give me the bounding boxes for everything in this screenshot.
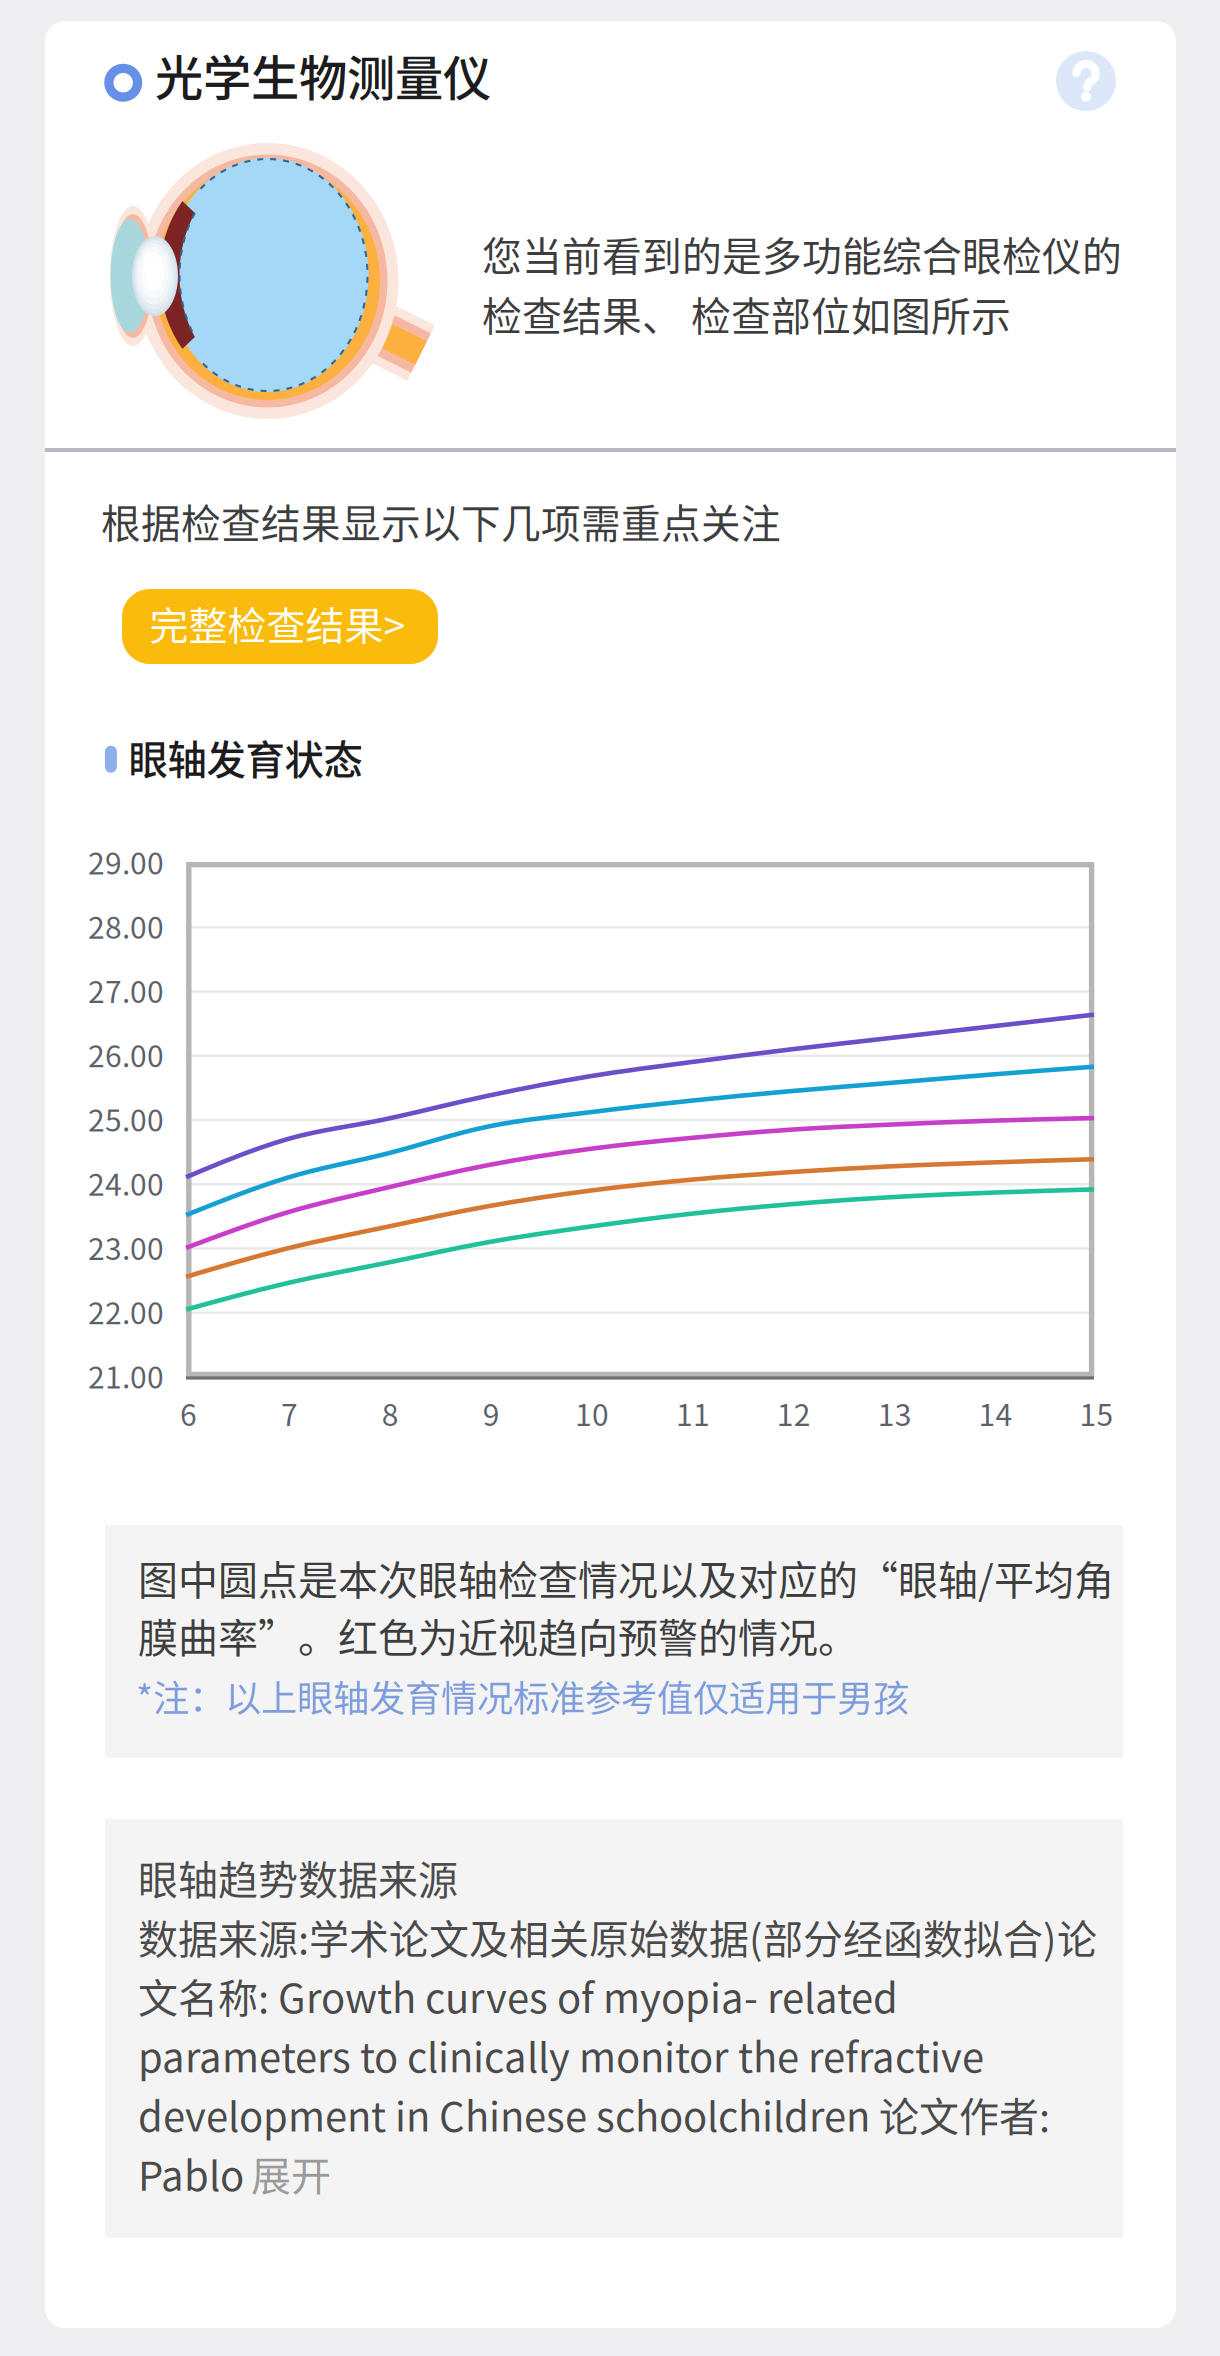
staticText: 图中圆点是本次眼轴检查情况以及对应的“眼轴/平均角 [138,1548,1114,1606]
button[interactable]: 完整检查结果> [122,589,438,664]
staticText: 8 [382,1391,399,1435]
staticText: 28.00 [88,904,164,947]
staticText: 完整检查结果> [149,595,405,651]
staticText: 眼轴发育状态 [129,729,363,786]
staticText: 24.00 [88,1161,164,1204]
staticText: parameters to clinically monitor the ref… [138,2026,984,2084]
staticText: 眼轴趋势数据来源 [138,1848,458,1906]
staticText: Pablo [138,2144,244,2202]
staticText: 10 [575,1391,609,1435]
staticText: 15 [1079,1391,1113,1435]
staticText: 13 [878,1391,912,1435]
staticText: 9 [483,1391,500,1435]
staticText: 11 [676,1391,710,1435]
button[interactable]: 帮助 [1056,51,1116,111]
staticText: 根据检查结果显示以下几项需重点关注 [101,492,781,550]
staticText: 26.00 [88,1032,164,1076]
staticText: development in Chinese schoolchildren 论文… [138,2085,1050,2143]
staticText: 25.00 [88,1097,164,1140]
staticText: 12 [777,1391,811,1435]
staticText: 27.00 [88,968,164,1012]
staticText: 数据来源:学术论文及相关原始数据(部分经函数拟合)论 [138,1907,1097,1965]
staticText: 文名称: Growth curves of myopia- related [138,1967,898,2025]
staticText: 22.00 [88,1289,164,1333]
staticText: 您当前看到的是多功能综合眼检仪的 [482,225,1122,282]
staticText: 7 [281,1391,298,1435]
staticText: 29.00 [88,840,164,883]
staticText: 展开 [251,2144,331,2202]
staticText: 6 [180,1391,197,1435]
staticText: 14 [979,1391,1013,1435]
staticText: 光学生物测量仪 [155,40,491,110]
staticText: 21.00 [88,1354,164,1397]
staticText: *注：以上眼轴发育情况标准参考值仅适用于男孩 [136,1670,909,1722]
staticText: 23.00 [88,1225,164,1269]
staticText: 检查结果、 检查部位如图所示 [482,285,1011,342]
staticText: 膜曲率”。红色为近视趋向预警的情况。 [138,1606,858,1664]
